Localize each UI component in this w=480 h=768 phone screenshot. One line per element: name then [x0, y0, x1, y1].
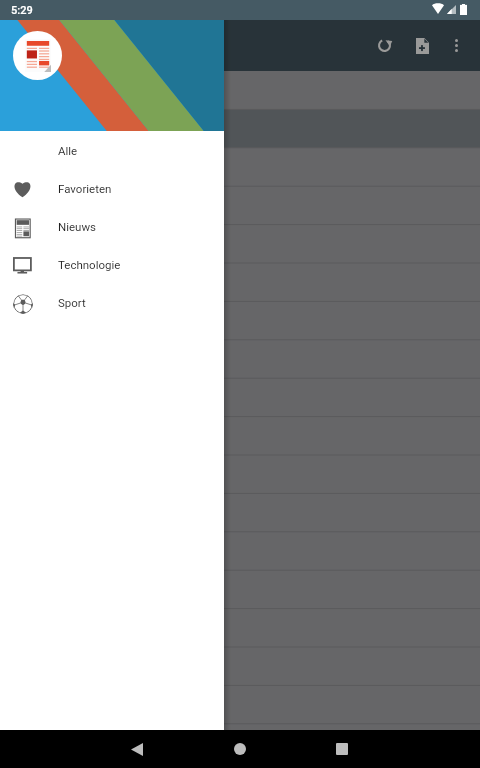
button[interactable]: Recents	[320, 730, 364, 768]
staticText: Alle	[58, 144, 78, 157]
button[interactable]	[0, 413, 480, 451]
button[interactable]	[0, 261, 480, 299]
button[interactable]: Refresh	[365, 20, 404, 71]
button[interactable]: Back	[115, 730, 159, 768]
button[interactable]	[0, 71, 480, 109]
staticText: Technologie	[58, 258, 121, 271]
button[interactable]: Technologie	[0, 245, 224, 283]
button[interactable]	[0, 451, 480, 489]
button[interactable]	[0, 147, 480, 185]
button[interactable]	[0, 223, 480, 261]
button[interactable]	[0, 641, 480, 679]
button[interactable]	[0, 337, 480, 375]
button[interactable]: Nieuws	[0, 207, 224, 245]
button[interactable]: Add feed	[403, 20, 442, 71]
button[interactable]: Sport	[0, 283, 224, 321]
button[interactable]	[0, 375, 480, 413]
staticText: Sport	[58, 296, 86, 309]
button[interactable]	[0, 489, 480, 527]
button[interactable]	[0, 565, 480, 603]
button[interactable]	[0, 717, 480, 730]
button[interactable]	[0, 109, 480, 147]
staticText: Favorieten	[58, 182, 112, 195]
button[interactable]	[0, 679, 480, 717]
button[interactable]	[0, 527, 480, 565]
button[interactable]: Home	[218, 730, 262, 768]
button[interactable]	[0, 603, 480, 641]
button[interactable]	[0, 185, 480, 223]
staticText: Nieuws	[58, 220, 97, 233]
button[interactable]: More options	[438, 20, 474, 71]
button[interactable]	[0, 299, 480, 337]
button[interactable]: Favorieten	[0, 169, 224, 207]
button[interactable]: Alle	[0, 131, 224, 169]
staticText: 5:29	[11, 4, 33, 17]
